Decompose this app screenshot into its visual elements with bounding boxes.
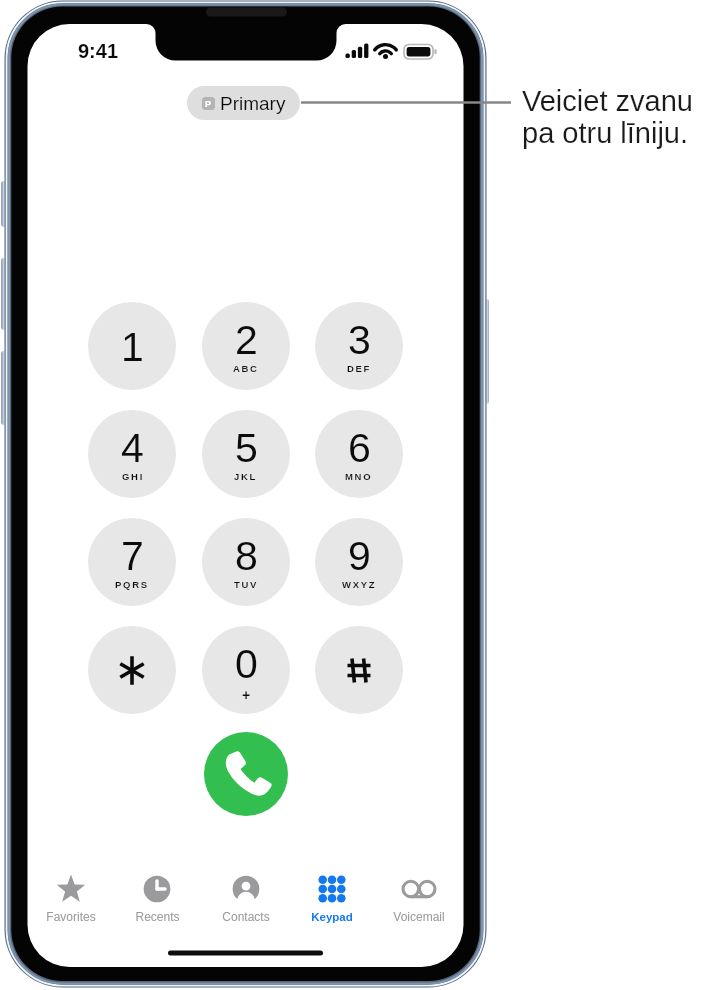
staticText: P [205,99,212,109]
staticText: Veiciet zvanu pa otru līniju. [522,85,693,149]
staticText: 4 [121,425,144,471]
staticText: JKL [234,471,258,482]
staticText: + [242,687,251,703]
staticText: Recents [135,910,180,923]
staticText: 6 [348,425,371,471]
staticText: Contacts [222,910,270,923]
staticText: ABC [233,363,259,374]
staticText: 8 [235,533,258,579]
button[interactable]: 0 [202,626,290,714]
staticText: Keypad [311,911,353,924]
staticText: 1 [121,324,144,370]
staticText: 7 [121,533,144,579]
button[interactable]: 1 [88,302,176,390]
staticText: Primary [220,93,286,114]
staticText: TUV [234,579,259,590]
button[interactable]: Keypad [284,874,380,930]
staticText: 9:41 [78,40,119,62]
staticText: 2 [235,317,258,363]
button[interactable]: # [315,626,403,714]
button[interactable]: Call [204,732,288,816]
button[interactable]: * [88,626,176,714]
button[interactable]: Voicemail [371,874,467,930]
button[interactable]: 5 [202,410,290,498]
button[interactable]: 6 [315,410,403,498]
staticText: PQRS [115,579,149,590]
button[interactable]: 7 [88,518,176,606]
button[interactable]: Recents [109,874,205,930]
staticText: 0 [235,641,258,687]
staticText: 5 [235,425,258,471]
staticText: Favorites [46,910,96,923]
button[interactable]: 2 [202,302,290,390]
staticText: MNO [345,471,373,482]
button[interactable]: P [187,86,300,120]
button[interactable]: 3 [315,302,403,390]
button[interactable]: Contacts [198,874,294,930]
button[interactable]: Favorites [23,874,119,930]
button[interactable]: 9 [315,518,403,606]
staticText: Voicemail [393,910,445,923]
button[interactable]: 8 [202,518,290,606]
staticText: GHI [122,471,144,482]
staticText: DEF [347,363,372,374]
staticText: WXYZ [342,579,377,590]
staticText: 9 [348,533,371,579]
button[interactable]: 4 [88,410,176,498]
staticText: 3 [348,317,371,363]
